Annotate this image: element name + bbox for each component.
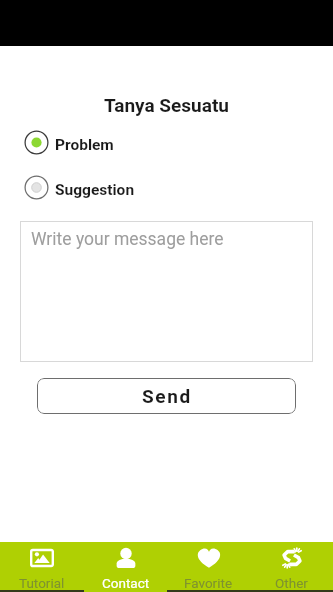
staticText: Send [142,385,192,407]
staticText: Problem [55,136,114,154]
button[interactable]: Suggestion [0,174,333,200]
staticText: Suggestion [55,181,135,199]
button[interactable]: Write your message here [20,221,313,362]
button[interactable]: Tutorial [0,542,84,592]
button[interactable]: Contact [84,542,167,592]
staticText: Other [275,575,308,591]
other: Tutorial [30,548,54,568]
staticText: Favorite [184,575,233,591]
other: Contact [114,548,138,568]
other: Other [280,548,304,568]
button[interactable]: Problem [0,129,333,155]
button[interactable]: Favorite [167,542,250,592]
staticText: Contact [102,575,150,591]
button[interactable]: Send [37,378,296,414]
staticText: Tutorial [19,575,65,591]
staticText: Write your message here [31,229,224,250]
staticText: Tanya Sesuatu [0,94,333,116]
button[interactable]: Other [250,542,333,592]
other: Favorite [197,548,221,568]
